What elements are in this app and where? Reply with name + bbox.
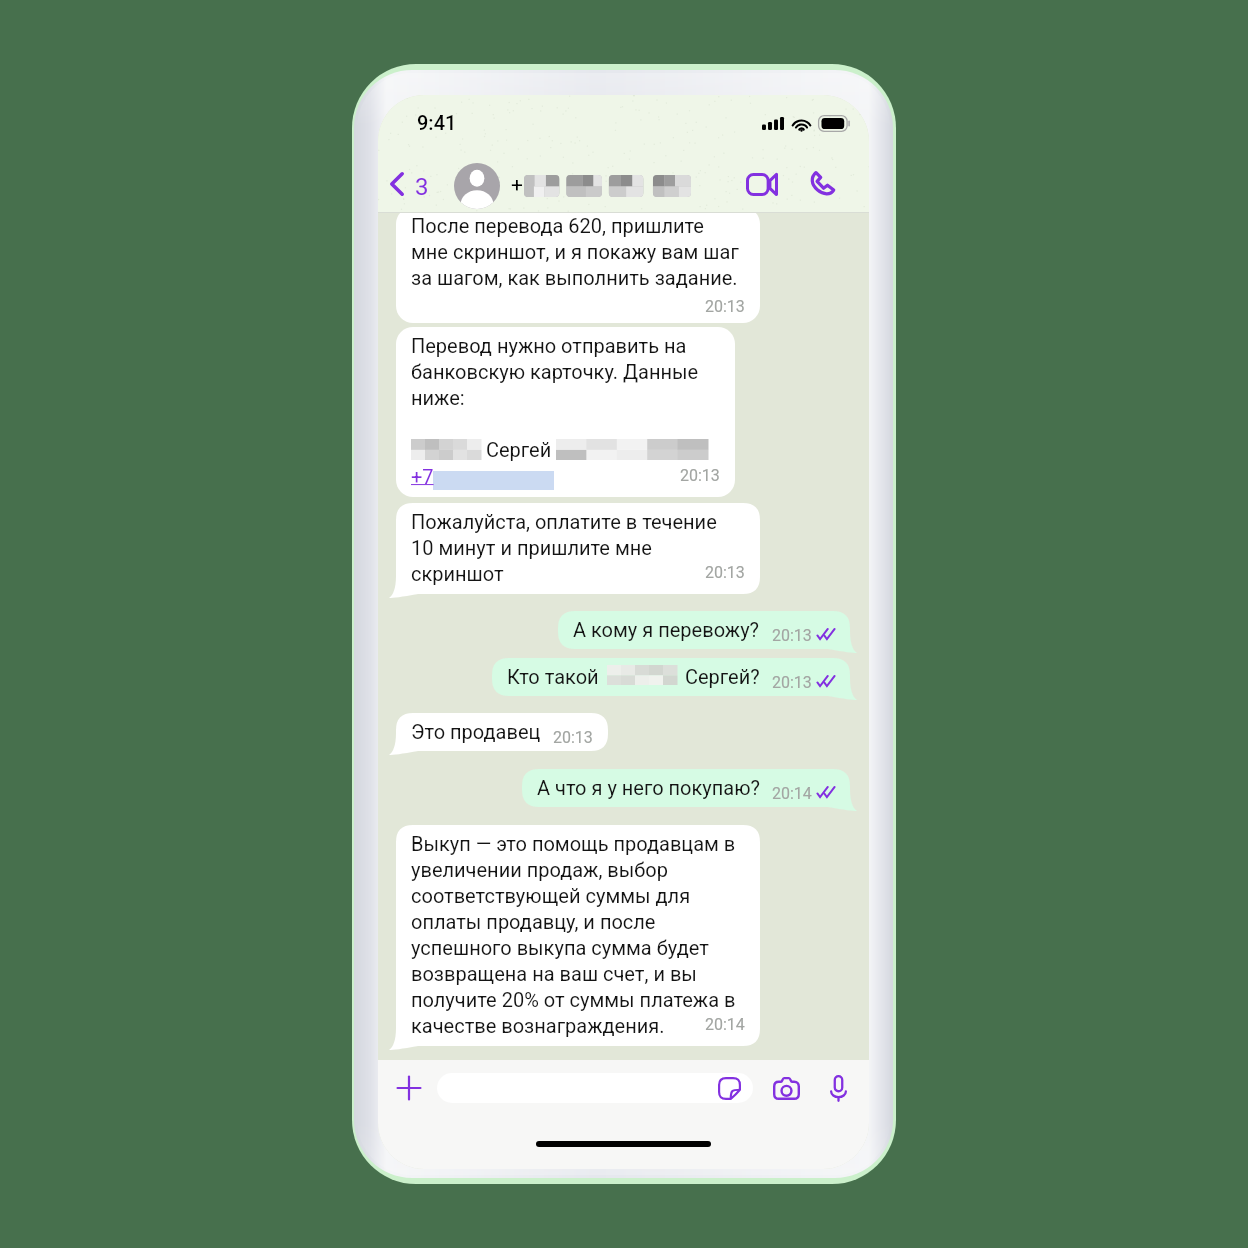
button[interactable]: Attach [389,1068,429,1108]
button[interactable]: А что я у него покупаю? [522,769,857,811]
staticText: Выкуп — это помощь продавцам в увеличени… [411,832,736,1037]
staticText: 20:13 [705,563,745,582]
button[interactable]: А кому я перевожу? [558,611,857,653]
staticText: + [511,173,523,198]
button[interactable]: Voice message [818,1068,858,1108]
staticText: Сергей [486,438,552,461]
staticText: 20:14 [705,1015,745,1034]
button[interactable]: Перевод нужно отправить на банковскую ка… [396,327,735,497]
button[interactable]: Это продавец [389,713,608,755]
button[interactable]: Voice call [802,163,842,205]
button[interactable]: Camera [766,1068,806,1108]
staticText: Это продавец [411,720,541,743]
staticText: 20:13 [772,673,812,692]
staticText: Кто такой [507,665,599,688]
button[interactable]: Video call [738,163,786,205]
button[interactable]: После перевода 620, пришлите мне скриншо… [396,207,760,323]
staticText: 20:13 [553,728,593,747]
staticText: 20:13 [680,466,720,485]
button[interactable]: Message input [437,1073,753,1103]
staticText: 20:13 [772,626,812,645]
staticText: 9:41 [417,111,457,134]
button[interactable]: 3 [415,173,429,201]
staticText: Пожалуйста, оплатите в течение 10 минут … [411,510,717,585]
staticText: +7 [411,465,434,488]
staticText: А кому я перевожу? [573,618,760,641]
button[interactable]: Back [378,164,417,204]
staticText: Сергей? [685,665,760,688]
button[interactable]: Contact info [454,163,691,209]
staticText: 20:14 [772,784,812,803]
button[interactable]: Пожалуйста, оплатите в течение 10 минут … [389,503,760,598]
button[interactable]: Выкуп — это помощь продавцам в увеличени… [389,825,760,1050]
staticText: А что я у него покупаю? [537,776,760,799]
staticText: 20:13 [705,297,745,316]
button[interactable]: Кто такой [492,658,857,700]
staticText: После перевода 620, пришлите мне скриншо… [411,214,739,289]
staticText: Перевод нужно отправить на банковскую ка… [411,334,699,409]
